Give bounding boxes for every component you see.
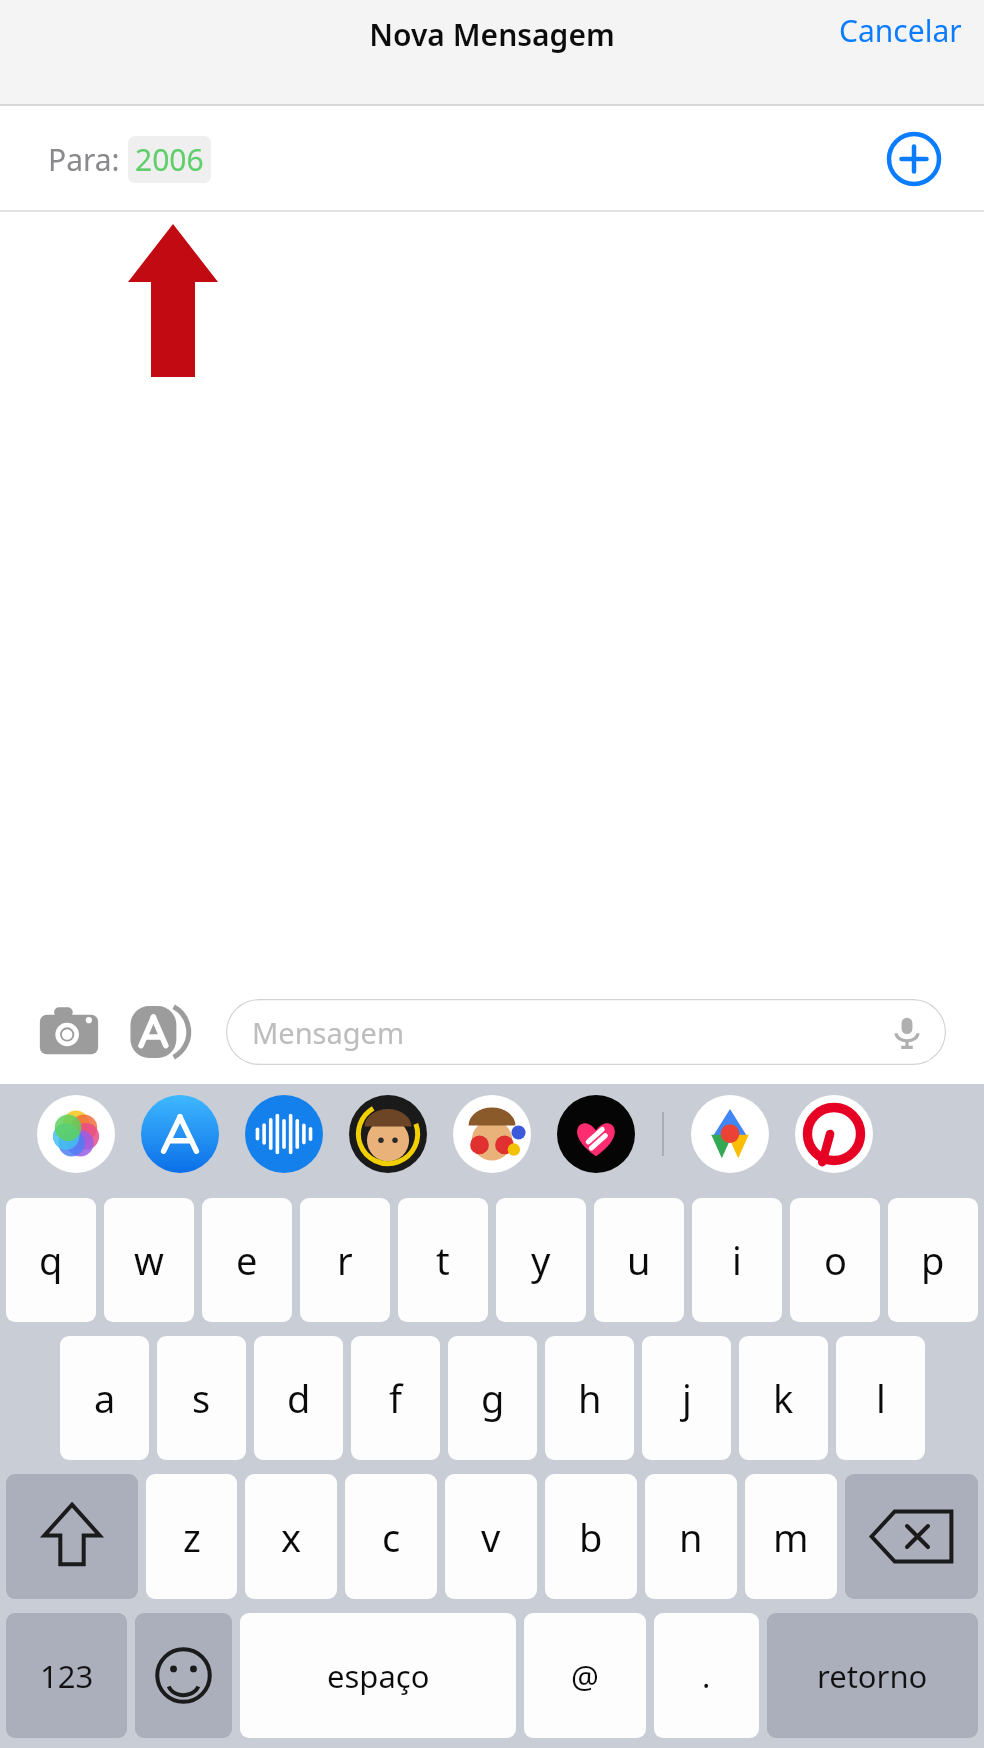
button[interactable]: m: [745, 1474, 837, 1599]
button[interactable]: App Store: [141, 1095, 219, 1173]
button[interactable]: o: [790, 1198, 880, 1322]
staticText: x: [281, 1511, 302, 1563]
staticText: i: [732, 1234, 742, 1286]
staticText: u: [627, 1234, 651, 1286]
button[interactable]: i: [692, 1198, 782, 1322]
button[interactable]: Emoji: [135, 1613, 232, 1738]
button[interactable]: Shift: [6, 1474, 138, 1599]
button[interactable]: l: [836, 1336, 925, 1460]
button[interactable]: espaço: [240, 1613, 516, 1738]
staticText: s: [192, 1372, 211, 1424]
staticText: l: [876, 1372, 886, 1424]
button[interactable]: .: [654, 1613, 759, 1738]
button[interactable]: p: [888, 1198, 978, 1322]
staticText: d: [287, 1372, 311, 1424]
button[interactable]: r: [300, 1198, 390, 1322]
staticText: Mensagem: [252, 1013, 405, 1052]
staticText: p: [921, 1234, 945, 1286]
staticText: z: [183, 1511, 201, 1563]
staticText: t: [436, 1234, 450, 1286]
button[interactable]: Ditado: [890, 1015, 924, 1049]
staticText: f: [389, 1372, 403, 1424]
staticText: m: [773, 1511, 809, 1563]
button[interactable]: Áudio: [245, 1095, 323, 1173]
button[interactable]: u: [594, 1198, 684, 1322]
button[interactable]: h: [545, 1336, 634, 1460]
button[interactable]: Apagar: [845, 1474, 978, 1599]
button[interactable]: g: [448, 1336, 537, 1460]
button[interactable]: k: [739, 1336, 828, 1460]
button[interactable]: Saúde: [557, 1095, 635, 1173]
staticText: y: [531, 1234, 551, 1286]
button[interactable]: retorno: [767, 1613, 978, 1738]
button[interactable]: @: [524, 1613, 646, 1738]
button[interactable]: Maps: [691, 1095, 769, 1173]
button[interactable]: y: [496, 1198, 586, 1322]
staticText: .: [702, 1655, 711, 1697]
staticText: 2006: [135, 139, 204, 180]
button[interactable]: Fotos: [37, 1095, 115, 1173]
staticText: g: [481, 1372, 505, 1424]
staticText: espaço: [327, 1655, 430, 1697]
staticText: retorno: [817, 1655, 928, 1697]
staticText: Para:: [48, 139, 120, 180]
button[interactable]: Mensagem: [226, 999, 946, 1065]
button[interactable]: Memoji 2: [453, 1095, 531, 1173]
button[interactable]: j: [642, 1336, 731, 1460]
staticText: c: [382, 1511, 401, 1563]
button[interactable]: x: [245, 1474, 337, 1599]
staticText: 123: [40, 1655, 94, 1697]
button[interactable]: w: [104, 1198, 194, 1322]
button[interactable]: App Store: [128, 1001, 190, 1063]
button[interactable]: Pinterest: [795, 1095, 873, 1173]
staticText: k: [773, 1372, 794, 1424]
staticText: w: [134, 1234, 164, 1286]
staticText: b: [579, 1511, 603, 1563]
staticText: q: [39, 1234, 63, 1286]
staticText: j: [682, 1372, 692, 1424]
button[interactable]: Cancelar: [815, 0, 984, 67]
staticText: e: [236, 1234, 258, 1286]
button[interactable]: 2006: [128, 136, 211, 183]
staticText: o: [824, 1234, 847, 1286]
staticText: Nova Mensagem: [369, 14, 615, 55]
button[interactable]: f: [351, 1336, 440, 1460]
staticText: h: [578, 1372, 602, 1424]
button[interactable]: v: [445, 1474, 537, 1599]
staticText: @: [571, 1655, 599, 1697]
button[interactable]: t: [398, 1198, 488, 1322]
button[interactable]: s: [157, 1336, 246, 1460]
button[interactable]: 123: [6, 1613, 127, 1738]
button[interactable]: e: [202, 1198, 292, 1322]
staticText: v: [481, 1511, 501, 1563]
staticText: n: [679, 1511, 703, 1563]
button[interactable]: Câmera: [38, 1001, 100, 1063]
button[interactable]: z: [146, 1474, 237, 1599]
button[interactable]: n: [645, 1474, 737, 1599]
staticText: r: [337, 1234, 353, 1286]
button[interactable]: d: [254, 1336, 343, 1460]
staticText: Cancelar: [839, 10, 962, 51]
button[interactable]: Adicionar contato: [884, 129, 944, 189]
button[interactable]: c: [345, 1474, 437, 1599]
button[interactable]: Memoji: [349, 1095, 427, 1173]
button[interactable]: b: [545, 1474, 637, 1599]
staticText: a: [94, 1372, 116, 1424]
button[interactable]: a: [60, 1336, 149, 1460]
button[interactable]: q: [6, 1198, 96, 1322]
